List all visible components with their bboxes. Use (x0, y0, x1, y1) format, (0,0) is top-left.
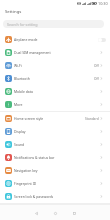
button[interactable]: Home screen style (0, 112, 110, 125)
button[interactable]: More (0, 98, 110, 111)
staticText: Sound (14, 142, 25, 147)
button[interactable]: Airplane mode (0, 33, 110, 46)
button[interactable]: Wi-Fi (0, 59, 110, 72)
staticText: Bluetooth (14, 76, 30, 81)
button[interactable]: Recent apps (67, 206, 81, 220)
button[interactable]: Home (48, 206, 62, 220)
button[interactable]: Navigation key (0, 164, 110, 177)
staticText: Fingerprint ID (14, 181, 37, 186)
staticText: Off (94, 64, 99, 68)
staticText: Home screen style (14, 116, 44, 121)
staticText: Off (94, 77, 99, 81)
button[interactable]: Search for setting (3, 20, 104, 28)
staticText: Display (14, 129, 26, 134)
staticText: Notifications & status bar (14, 155, 55, 160)
staticText: Search for setting (7, 22, 38, 27)
button[interactable]: Screen lock & passwords (0, 190, 110, 203)
button[interactable]: Sound (0, 138, 110, 151)
button[interactable]: Mobile data (0, 85, 110, 98)
button[interactable]: Back (29, 206, 43, 220)
staticText: More (14, 102, 23, 107)
staticText: Airplane mode (14, 37, 38, 42)
staticText: Mobile data (14, 89, 33, 94)
staticText: 10:30 (98, 1, 108, 6)
staticText: Standard (85, 117, 99, 121)
button[interactable]: Bluetooth (0, 72, 110, 85)
button[interactable]: Notifications & status bar (0, 151, 110, 164)
staticText: Wi-Fi (14, 63, 22, 68)
button[interactable]: Dual SIM management (0, 46, 110, 59)
staticText: Dual SIM management (14, 50, 51, 55)
button[interactable]: Display (0, 125, 110, 138)
staticText: Screen lock & passwords (14, 194, 54, 199)
button[interactable]: Fingerprint ID (0, 177, 110, 190)
staticText: Navigation key (14, 168, 38, 173)
staticText: Settings (5, 8, 22, 14)
